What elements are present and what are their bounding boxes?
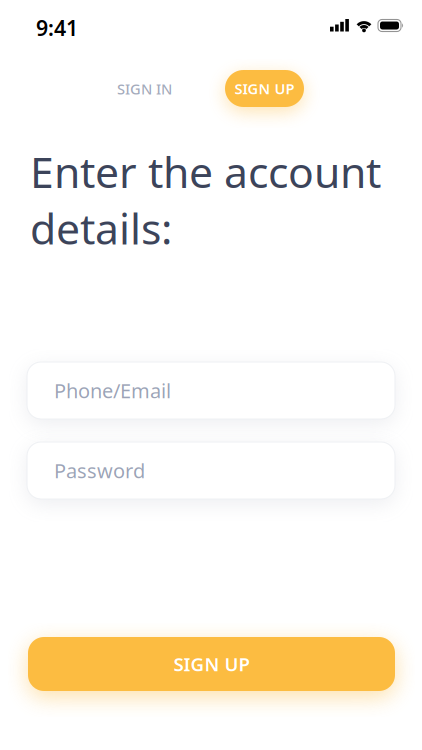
button[interactable]: Password <box>27 442 395 499</box>
staticText: Enter the account details: <box>30 143 381 256</box>
staticText: SIGN IN <box>117 79 172 98</box>
staticText: Password <box>54 457 145 484</box>
staticText: 9:41 <box>36 13 78 42</box>
button[interactable]: SIGN IN <box>117 79 172 98</box>
staticText: SIGN UP <box>234 79 294 98</box>
button[interactable]: SIGN UP <box>225 70 304 107</box>
staticText: Phone/Email <box>54 377 171 404</box>
button[interactable]: SIGN UP <box>28 637 395 691</box>
button[interactable]: Phone/Email <box>27 362 395 419</box>
staticText: SIGN UP <box>173 652 249 676</box>
